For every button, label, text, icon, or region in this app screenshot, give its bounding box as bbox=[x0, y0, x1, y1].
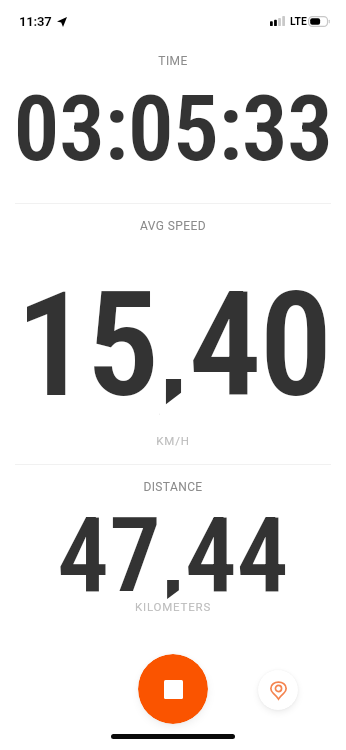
staticText: KM/H bbox=[0, 434, 346, 447]
staticText: 03:05:33 bbox=[0, 75, 346, 182]
staticText: LTE bbox=[290, 15, 307, 27]
staticText: 15,40 bbox=[0, 260, 346, 430]
staticText: 11:37 bbox=[19, 14, 52, 29]
staticText: TIME bbox=[0, 54, 346, 68]
staticText: AVG SPEED bbox=[0, 219, 346, 233]
staticText: 47,44 bbox=[0, 495, 346, 616]
button[interactable]: Recenter map bbox=[258, 670, 298, 710]
button[interactable]: Stop recording bbox=[138, 654, 208, 724]
staticText: KILOMETERS bbox=[0, 600, 346, 613]
staticText: DISTANCE bbox=[0, 480, 346, 494]
